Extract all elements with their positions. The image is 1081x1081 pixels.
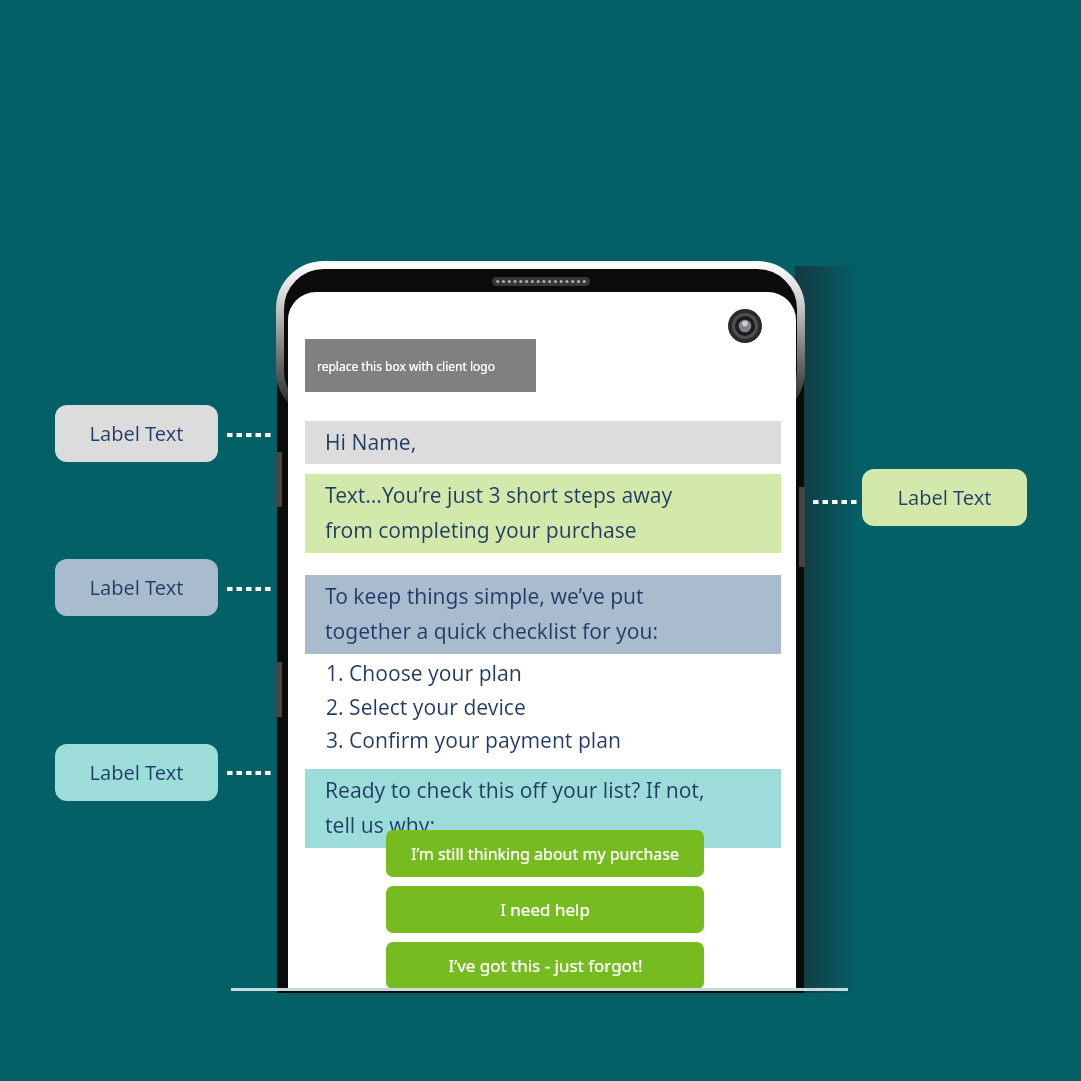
staticText: Label Text <box>89 420 184 447</box>
staticText: Text…You’re just 3 short steps away from… <box>325 481 673 545</box>
button[interactable]: I need help <box>386 886 704 933</box>
other: Connector line <box>813 500 853 504</box>
button[interactable]: I’ve got this - just forgot! <box>386 942 704 989</box>
other: Connector line <box>227 771 267 775</box>
staticText: I’m still thinking about my purchase <box>411 843 679 865</box>
staticText: Label Text <box>89 574 184 601</box>
button[interactable]: Label Text <box>862 469 1027 526</box>
staticText: replace this box with client logo <box>317 358 495 374</box>
button[interactable]: Label Text <box>55 559 218 616</box>
staticText: Label Text <box>897 484 992 511</box>
button[interactable]: Label Text <box>55 744 218 801</box>
staticText: I need help <box>500 898 590 921</box>
staticText: I’ve got this - just forgot! <box>448 954 643 977</box>
staticText: 1. Choose your plan 2. Select your devic… <box>326 659 621 754</box>
button[interactable]: Label Text <box>55 405 218 462</box>
button[interactable]: replace this box with client logo <box>305 339 536 392</box>
button[interactable]: I’m still thinking about my purchase <box>386 830 704 877</box>
other: Connector line <box>227 587 267 591</box>
other: Front camera <box>728 309 762 343</box>
staticText: Ready to check this off your list? If no… <box>325 776 705 840</box>
other: Connector line <box>227 433 267 437</box>
staticText: Label Text <box>89 759 184 786</box>
staticText: Hi Name, <box>325 428 417 457</box>
staticText: To keep things simple, we’ve put togethe… <box>325 582 659 646</box>
